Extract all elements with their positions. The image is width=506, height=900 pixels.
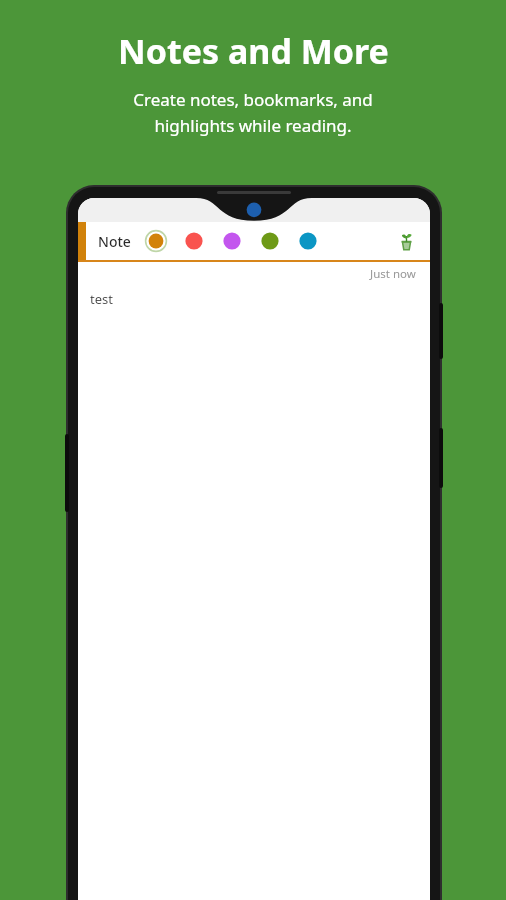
- button[interactable]: Highlighter: [390, 225, 422, 257]
- staticText: Create notes, bookmarks, and: [133, 88, 373, 111]
- staticText: Just now: [370, 266, 416, 282]
- staticText: Notes and More: [118, 28, 389, 74]
- button[interactable]: Colour swatch: [183, 230, 205, 252]
- staticText: Note: [98, 232, 131, 251]
- button[interactable]: Colour swatch: [145, 230, 167, 252]
- button[interactable]: Colour swatch: [259, 230, 281, 252]
- button[interactable]: Colour swatch: [297, 230, 319, 252]
- staticText: test: [90, 290, 113, 308]
- staticText: highlights while reading.: [154, 114, 352, 137]
- button[interactable]: Colour swatch: [221, 230, 243, 252]
